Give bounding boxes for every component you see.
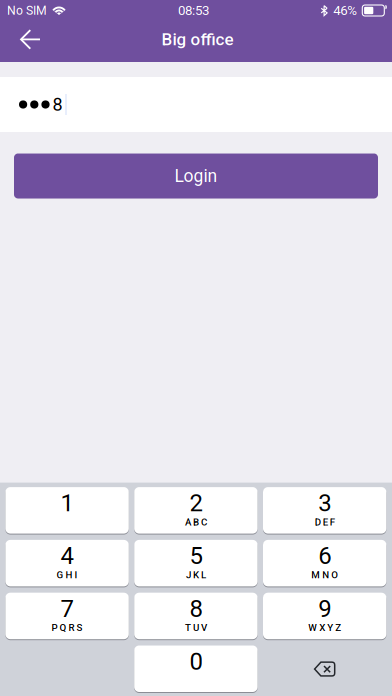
staticText: No SIM [7,3,47,18]
button[interactable]: 8 [134,593,258,640]
staticText: A B C [185,516,207,528]
staticText: Big office [161,29,233,49]
button[interactable]: Back [0,19,55,59]
button[interactable]: 2 [134,488,258,534]
button[interactable]: 0 [134,646,258,692]
staticText: 08:53 [178,3,209,18]
button[interactable]: 5 [134,540,258,587]
staticText: 9 [318,595,331,623]
staticText: 8 [189,595,202,623]
staticText: 1 [61,489,74,517]
staticText: 3 [318,489,331,517]
staticText: 5 [189,542,202,570]
button[interactable]: Delete [263,646,386,692]
staticText: 7 [61,595,74,623]
staticText: W X Y Z [308,622,341,633]
staticText: G H I [57,569,78,581]
button[interactable]: 4 [5,540,129,587]
button[interactable]: 3 [263,488,386,534]
button[interactable]: 1 [5,488,129,534]
staticText: M N O [311,569,338,581]
staticText: J K L [186,569,206,581]
staticText: 0 [189,647,202,675]
staticText: 6 [318,542,331,570]
staticText: 8 [53,94,63,115]
staticText: P Q R S [52,622,83,633]
staticText: T U V [185,622,207,633]
staticText: 2 [189,489,202,517]
staticText: 4 [61,542,74,570]
staticText: Login [174,166,217,186]
button[interactable]: Login [14,153,378,198]
staticText: 46% [333,3,357,18]
button[interactable]: 7 [5,593,129,640]
button[interactable]: 6 [263,540,386,587]
staticText: D E F [315,516,335,528]
button[interactable]: 9 [263,593,386,640]
